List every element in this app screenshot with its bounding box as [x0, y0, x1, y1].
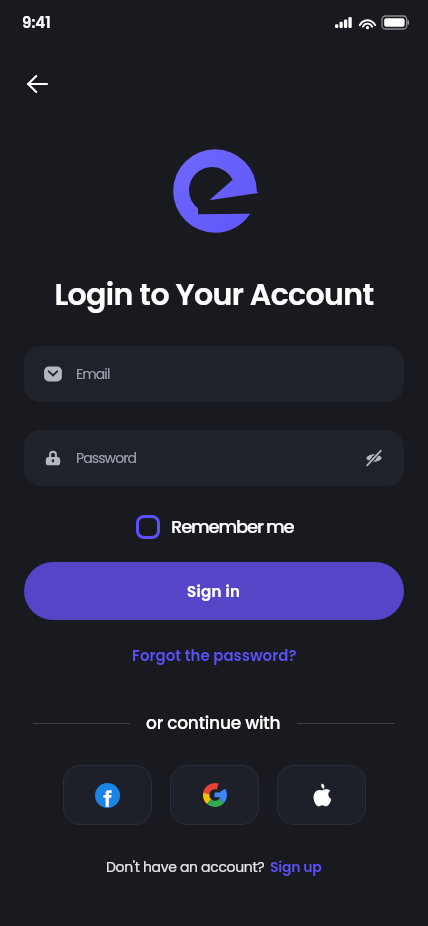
staticText: Login to Your Account — [0, 274, 428, 316]
staticText: Remember me — [171, 514, 294, 539]
staticText: Email — [76, 364, 110, 384]
staticText: or continue with — [146, 711, 281, 735]
button[interactable]: Email — [24, 346, 404, 402]
button[interactable]: Show password — [359, 443, 389, 473]
button[interactable]: Sign in with Apple — [277, 765, 366, 825]
staticText: Sign up — [270, 857, 322, 877]
button[interactable]: Sign in with Google — [170, 765, 259, 825]
button[interactable]: Remember me — [132, 510, 298, 543]
staticText: Password — [76, 448, 137, 468]
staticText: Don't have an account? — [106, 857, 265, 877]
staticText: 9:41 — [22, 12, 51, 33]
button[interactable]: Forgot the password? — [126, 642, 303, 669]
staticText: Forgot the password? — [132, 645, 297, 666]
button[interactable]: Sign up — [270, 857, 322, 877]
button[interactable]: Password — [24, 430, 404, 486]
button[interactable]: Back — [13, 60, 61, 108]
staticText: Sign in — [187, 581, 241, 602]
button[interactable]: Sign in with Facebook — [63, 765, 152, 825]
button[interactable]: Sign in — [24, 562, 404, 620]
